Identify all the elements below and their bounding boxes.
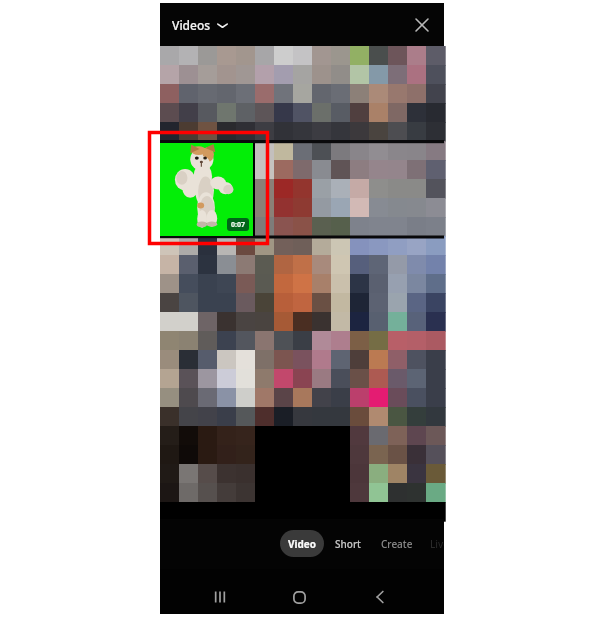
staticText: Short [335,537,361,551]
button[interactable]: Short [331,530,365,557]
button[interactable]: Home [283,581,315,613]
button[interactable]: Videos [172,17,228,33]
button[interactable]: Recent apps [204,581,236,613]
button[interactable]: Create [378,530,416,557]
staticText: Create [381,537,413,551]
button[interactable]: Back [364,581,396,613]
staticText: Videos [172,17,211,33]
staticText: 0:07 [231,220,245,230]
button[interactable]: Video [280,530,324,557]
staticText: Live [430,537,444,551]
staticText: Video [288,537,317,551]
button[interactable]: Close [409,12,435,38]
button[interactable]: Live [430,530,444,557]
